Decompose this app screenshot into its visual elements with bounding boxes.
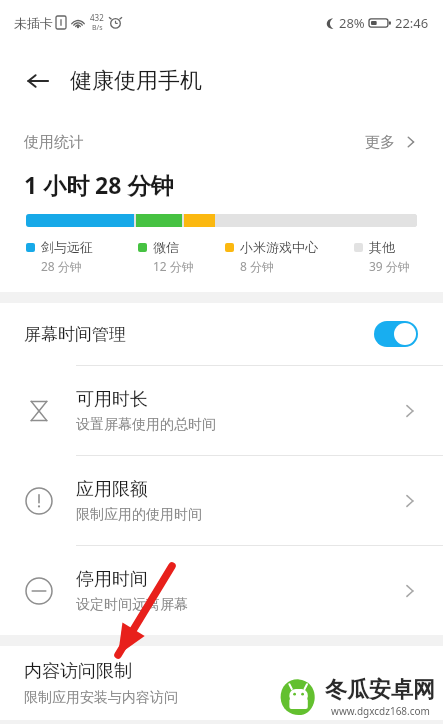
staticText: 更多	[365, 133, 395, 152]
staticText: 39 分钟	[369, 258, 410, 274]
button[interactable]: 屏幕时间管理开关	[374, 321, 418, 347]
staticText: 未插卡	[14, 15, 53, 31]
button[interactable]: 返回	[16, 59, 60, 103]
button[interactable]: 内容访问限制	[0, 646, 443, 720]
staticText: 屏幕时间管理	[24, 324, 126, 345]
staticText: 设定时间远离屏幕	[76, 596, 188, 614]
staticText: 432	[90, 12, 104, 23]
staticText: 限制应用安装与内容访问	[24, 689, 178, 707]
staticText: 28 分钟	[41, 258, 82, 274]
staticText: 健康使用手机	[70, 67, 202, 95]
button[interactable]: 屏幕时间管理	[0, 303, 443, 365]
staticText: 12 分钟	[153, 258, 194, 274]
staticText: 1 小时 28 分钟	[24, 169, 174, 200]
staticText: 其他	[369, 239, 395, 255]
staticText: 8 分钟	[240, 258, 274, 274]
staticText: 使用统计	[24, 133, 84, 152]
button[interactable]: 可用时长	[0, 366, 443, 455]
button[interactable]: 停用时间	[0, 546, 443, 635]
staticText: 内容访问限制	[24, 660, 132, 683]
button[interactable]: 应用限额	[0, 456, 443, 545]
staticText: 剑与远征	[41, 239, 93, 255]
staticText: 22:46	[395, 14, 429, 32]
staticText: 28%	[339, 14, 365, 32]
staticText: www.dgxcdz168.com	[331, 704, 430, 718]
staticText: 设置屏幕使用的总时间	[76, 416, 216, 434]
staticText: 微信	[153, 239, 179, 255]
staticText: 冬瓜安卓网	[325, 676, 435, 704]
staticText: 应用限额	[76, 478, 148, 501]
staticText: 停用时间	[76, 568, 148, 591]
staticText: 小米游戏中心	[240, 239, 318, 255]
staticText: 可用时长	[76, 388, 148, 411]
button[interactable]: 使用统计	[0, 117, 443, 167]
staticText: 限制应用的使用时间	[76, 506, 202, 524]
staticText: B/s	[92, 23, 103, 33]
